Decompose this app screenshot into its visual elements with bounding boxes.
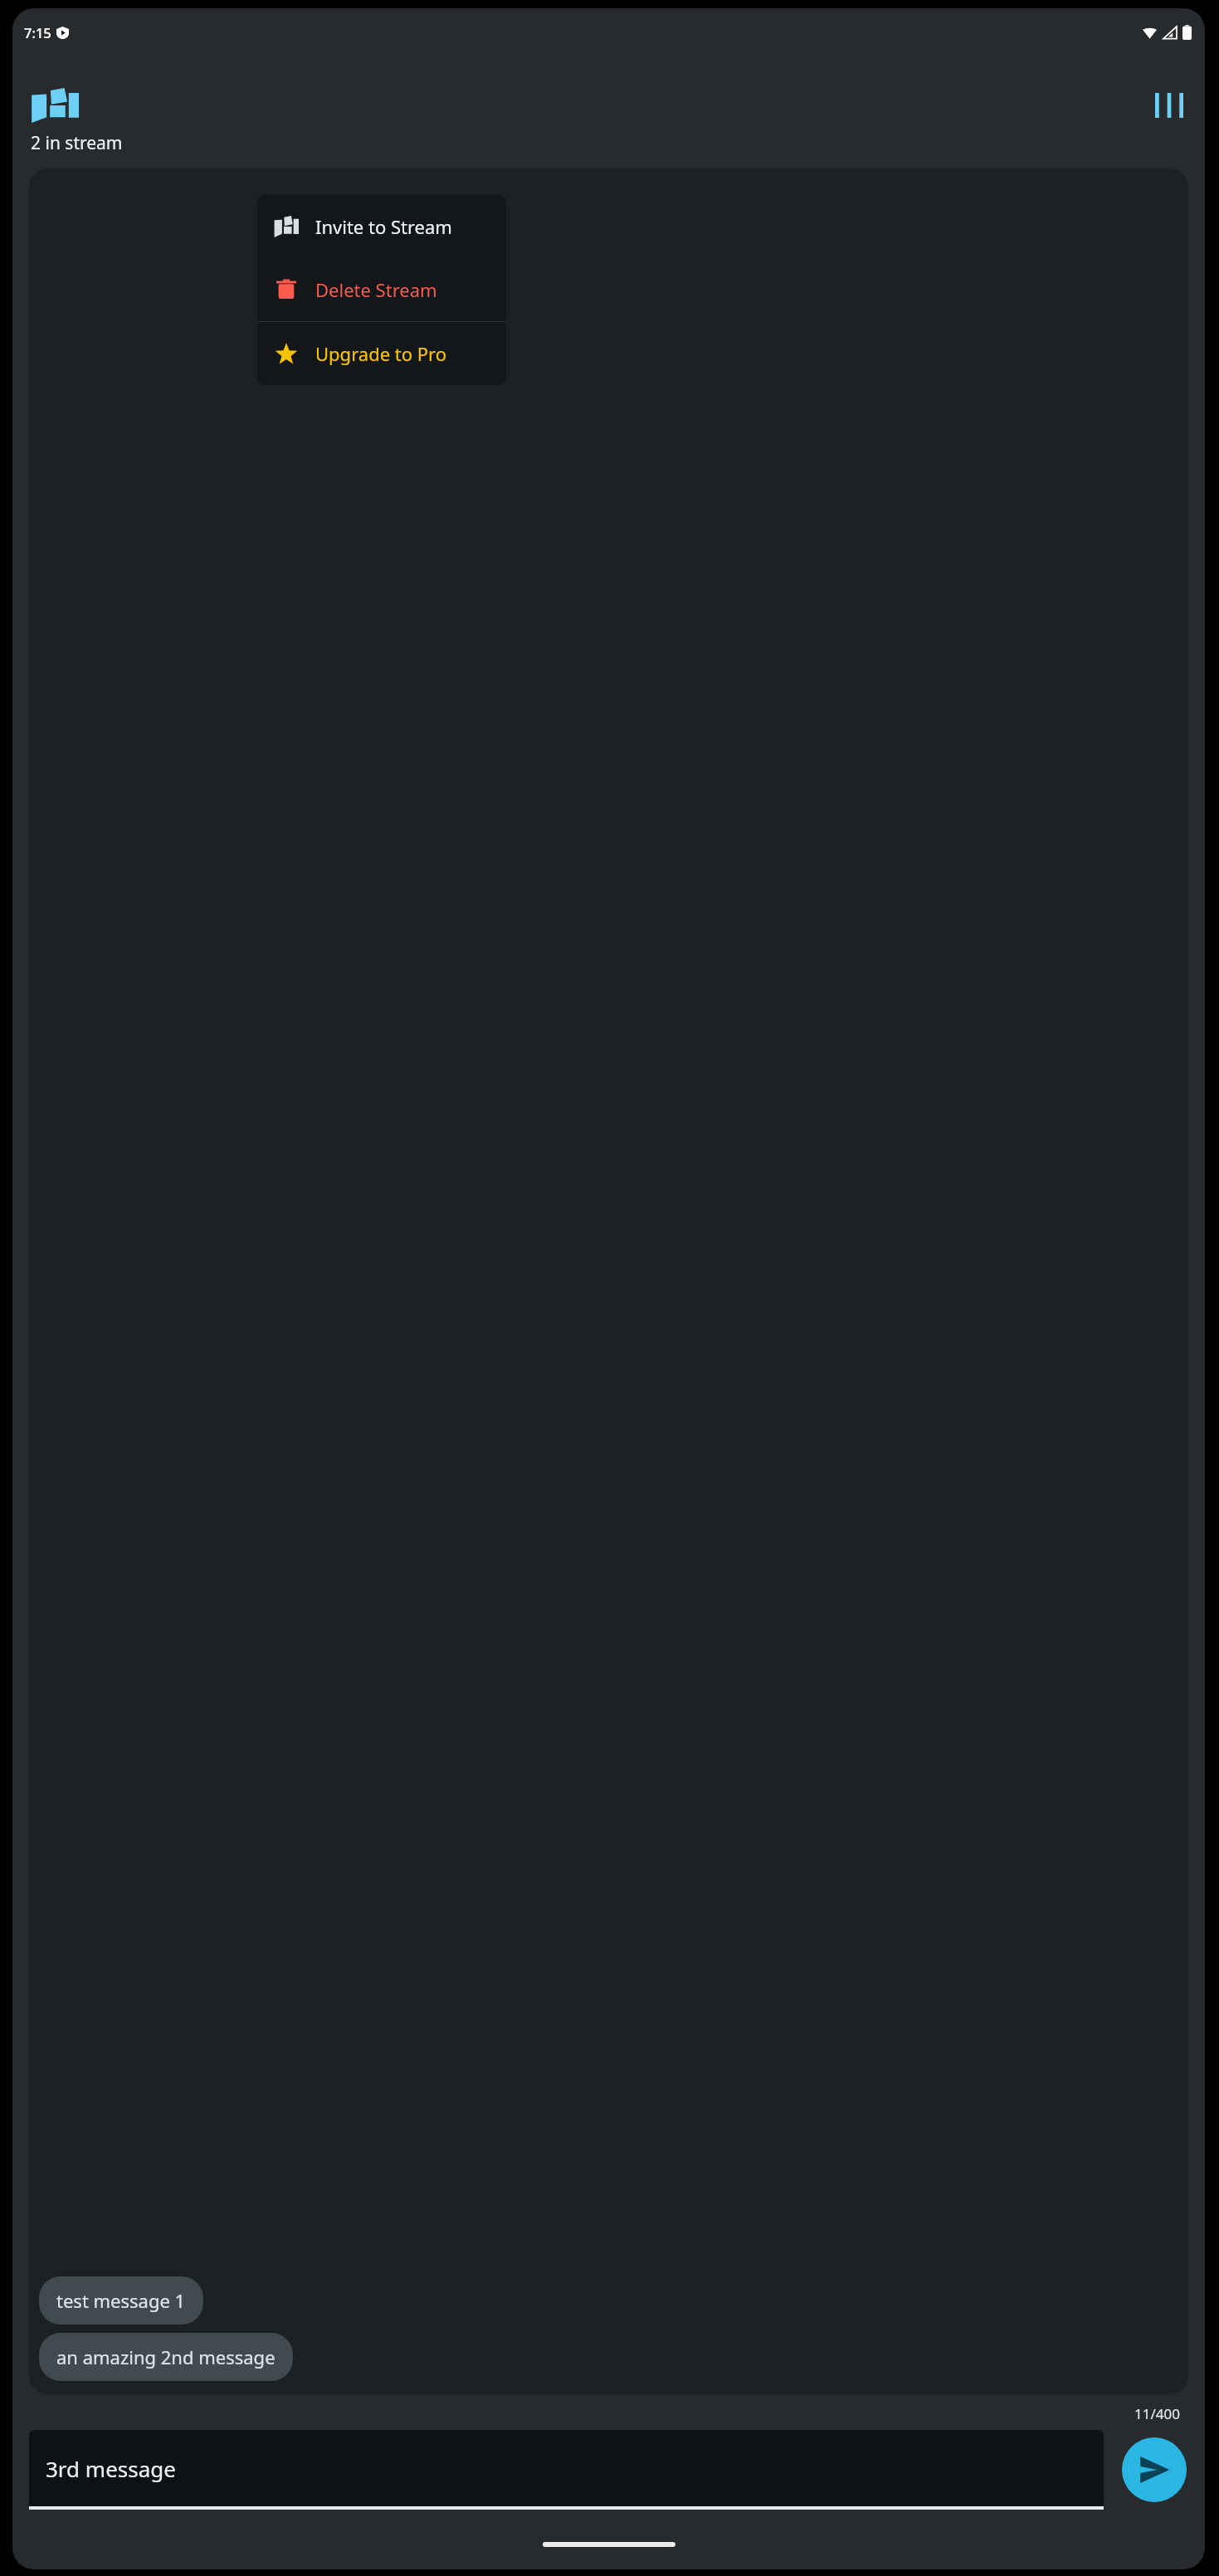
staticText: 7:15 bbox=[24, 23, 51, 41]
staticText: an amazing 2nd message bbox=[56, 2344, 275, 2369]
staticText: 3rd message bbox=[46, 2454, 176, 2483]
staticText: 2 in stream bbox=[31, 131, 123, 155]
button[interactable]: test message 1 bbox=[39, 2276, 203, 2325]
staticText: Delete Stream bbox=[315, 277, 437, 302]
staticText: 11/400 bbox=[1134, 2404, 1180, 2423]
button[interactable]: Delete Stream bbox=[257, 258, 506, 321]
staticText: Invite to Stream bbox=[315, 214, 452, 239]
button[interactable]: Upgrade to Pro bbox=[257, 322, 506, 385]
staticText: test message 1 bbox=[56, 2288, 186, 2313]
button[interactable]: Send message bbox=[1122, 2437, 1187, 2502]
staticText: Upgrade to Pro bbox=[315, 341, 447, 366]
button[interactable]: an amazing 2nd message bbox=[39, 2333, 293, 2381]
button[interactable]: More options bbox=[1148, 85, 1190, 126]
button[interactable]: 3rd message bbox=[29, 2430, 1104, 2510]
button[interactable]: Stream home bbox=[27, 85, 82, 126]
button[interactable]: Invite to Stream bbox=[257, 195, 506, 258]
